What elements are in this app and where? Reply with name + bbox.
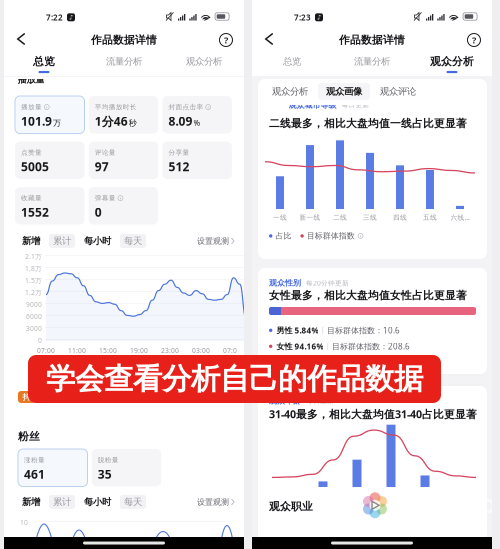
staticText: 观众评论	[380, 86, 416, 97]
staticText: COM	[468, 492, 500, 519]
button[interactable]: 分享量	[162, 141, 232, 179]
button[interactable]: 点赞量	[15, 141, 84, 179]
button[interactable]: 弹幕量	[89, 187, 158, 224]
staticText: 31-40最多，相比大盘均值31-40占比更显著	[269, 407, 477, 421]
staticText: 每天	[124, 235, 142, 247]
staticText: 六线…	[450, 213, 469, 222]
staticText: 101.9	[21, 113, 52, 129]
staticText: 每小时	[84, 235, 111, 247]
staticText: %	[193, 117, 200, 128]
staticText: 0	[95, 204, 102, 220]
staticText: 作品数据详情	[339, 33, 405, 46]
staticText: 粉丝	[18, 430, 40, 443]
staticText: 每20分钟更新	[306, 278, 349, 287]
staticText: 设置观测	[197, 236, 229, 246]
staticText: 512	[168, 159, 189, 175]
button[interactable]: 观众分析	[412, 52, 492, 76]
staticText: 弹幕量	[95, 194, 116, 202]
staticText: 观众年龄	[269, 396, 301, 406]
staticText: 女性 94.16%	[276, 341, 323, 352]
staticText: 观众城市等级	[288, 100, 336, 110]
staticText: ♪	[69, 13, 73, 21]
staticText: 2.1万	[25, 252, 42, 261]
button[interactable]: 新增	[18, 234, 44, 248]
staticText: 万	[53, 118, 61, 128]
staticText: 11:00	[68, 346, 86, 355]
staticText: 一线	[273, 213, 287, 221]
staticText: 总览	[33, 55, 55, 68]
staticText: 目标群体指数：208.6	[332, 341, 410, 352]
button[interactable]: 观众分析	[164, 52, 244, 76]
button[interactable]: 帮助	[462, 28, 486, 52]
staticText: 评论量	[95, 148, 116, 157]
staticText: 流量分析	[354, 56, 390, 67]
staticText: 分享量	[168, 148, 189, 157]
staticText: 1分46	[95, 113, 128, 129]
staticText: 新一线	[299, 213, 320, 221]
staticText: 设置观测	[197, 497, 229, 507]
staticText: 每日更新	[341, 101, 369, 109]
button[interactable]: 帮助	[214, 28, 238, 52]
staticText: 8.09	[168, 113, 192, 129]
staticText: 0	[38, 336, 42, 345]
staticText: 观众分析	[430, 55, 474, 68]
staticText: 97	[95, 159, 109, 175]
staticText: 占比	[275, 231, 291, 241]
button[interactable]: 总览	[252, 52, 332, 76]
staticText: 女性最多，相比大盘均值女性占比更显著	[269, 289, 467, 302]
button[interactable]: 每天	[120, 495, 146, 509]
staticText: 3000	[26, 324, 42, 333]
button[interactable]: 流量分析	[332, 52, 412, 76]
button[interactable]: 每小时	[80, 234, 115, 248]
staticText: 24-30	[348, 494, 366, 503]
button[interactable]: 累计	[49, 495, 75, 509]
button[interactable]: 封面点击率	[162, 96, 232, 133]
staticText: 9000	[26, 300, 42, 309]
button[interactable]: 平均播放时长	[89, 96, 158, 133]
button[interactable]: 观众画像	[318, 83, 370, 100]
staticText: 观众分析	[272, 86, 308, 97]
staticText: 6000	[26, 312, 42, 321]
staticText: 流量分析	[106, 56, 142, 67]
button[interactable]: 观众分析	[264, 83, 316, 100]
button[interactable]: 播放量	[15, 96, 84, 133]
button[interactable]: 总览	[4, 52, 84, 76]
staticText: 35	[98, 466, 112, 482]
staticText: 作品数据详情	[91, 33, 157, 46]
staticText: 秒	[129, 118, 137, 128]
staticText: 三线	[363, 213, 377, 221]
staticText: 占比	[275, 508, 291, 518]
staticText: 10	[20, 518, 28, 527]
staticText: 学会查看分析自己的作品数据	[46, 361, 423, 397]
staticText: 每日更新	[306, 397, 334, 405]
button[interactable]: 新增	[18, 495, 44, 509]
staticText: 二线	[333, 213, 347, 221]
button[interactable]: 涨粉量	[18, 449, 87, 486]
staticText: 7:22	[46, 12, 63, 23]
staticText: 1552	[21, 204, 49, 220]
button[interactable]: 设置观测	[197, 236, 234, 246]
button[interactable]: 返回	[257, 28, 281, 50]
staticText: 19:00	[130, 346, 148, 355]
staticText: 封面点击率	[168, 103, 203, 111]
staticText: 四线	[393, 213, 407, 221]
button[interactable]: 评论量	[89, 141, 158, 179]
staticText: 平均播放时长	[95, 103, 137, 111]
button[interactable]: 观众评论	[372, 83, 424, 100]
button[interactable]: 累计	[49, 234, 75, 248]
staticText: 目标群体指数	[307, 508, 355, 518]
staticText: 涨粉量	[24, 456, 45, 464]
staticText: ?	[472, 34, 476, 46]
button[interactable]: 脱粉量	[92, 449, 161, 486]
button[interactable]: 每天	[120, 234, 146, 248]
staticText: ♪	[317, 13, 321, 21]
staticText: 31-40	[382, 494, 400, 503]
button[interactable]: 返回	[9, 28, 33, 50]
button[interactable]: 收藏量	[15, 187, 84, 224]
staticText: 461	[24, 466, 45, 482]
staticText: 1.2万	[25, 288, 42, 297]
button[interactable]: 设置观测	[197, 497, 234, 507]
button[interactable]: 流量分析	[84, 52, 164, 76]
button[interactable]: 每小时	[80, 495, 115, 509]
